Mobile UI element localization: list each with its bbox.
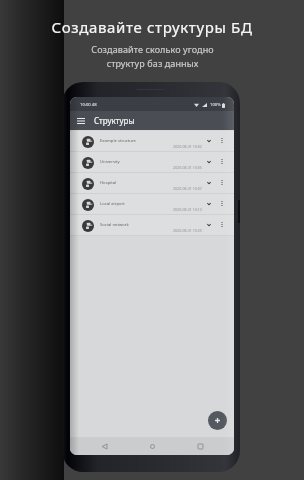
button[interactable]: Back <box>90 437 118 455</box>
staticText: 2020-08-31 10:13 <box>173 207 202 212</box>
staticText: 100% <box>210 102 221 108</box>
button[interactable]: Expand <box>204 173 214 194</box>
staticText: Example structure <box>100 138 136 144</box>
button[interactable]: Home <box>138 437 166 455</box>
button[interactable]: More options <box>217 194 226 215</box>
staticText: Структуры <box>94 115 135 126</box>
button[interactable]: Social network <box>70 215 234 236</box>
button[interactable]: Open navigation drawer <box>70 111 91 130</box>
button[interactable]: Expand <box>204 131 214 152</box>
staticText: University <box>100 159 120 165</box>
staticText: 2020-08-31 10:25 <box>173 228 202 233</box>
button[interactable]: More options <box>217 131 226 152</box>
button[interactable]: Expand <box>204 152 214 173</box>
button[interactable]: Expand <box>204 194 214 215</box>
button[interactable]: More options <box>217 215 226 236</box>
button[interactable]: More options <box>217 152 226 173</box>
button[interactable]: University <box>70 152 234 173</box>
staticText: 2020-08-31 10:05 <box>173 165 202 170</box>
staticText: Hospital <box>100 180 117 186</box>
staticText: 2020-08-31 10:02 <box>173 144 202 149</box>
staticText: Создавайте сколько угодно структур баз д… <box>91 43 214 69</box>
staticText: Создавайте структуры БД <box>51 17 253 37</box>
staticText: 2020-08-31 10:07 <box>173 186 202 191</box>
staticText: 10:00 48 <box>80 102 97 108</box>
staticText: Local airport <box>100 201 125 207</box>
button[interactable]: Recent apps <box>186 437 214 455</box>
button[interactable]: Expand <box>204 215 214 236</box>
button[interactable]: More options <box>217 173 226 194</box>
button[interactable]: Add structure <box>208 411 227 430</box>
button[interactable]: Local airport <box>70 194 234 215</box>
button[interactable]: Hospital <box>70 173 234 194</box>
button[interactable]: Example structure <box>70 131 234 152</box>
staticText: Social network <box>100 222 129 228</box>
